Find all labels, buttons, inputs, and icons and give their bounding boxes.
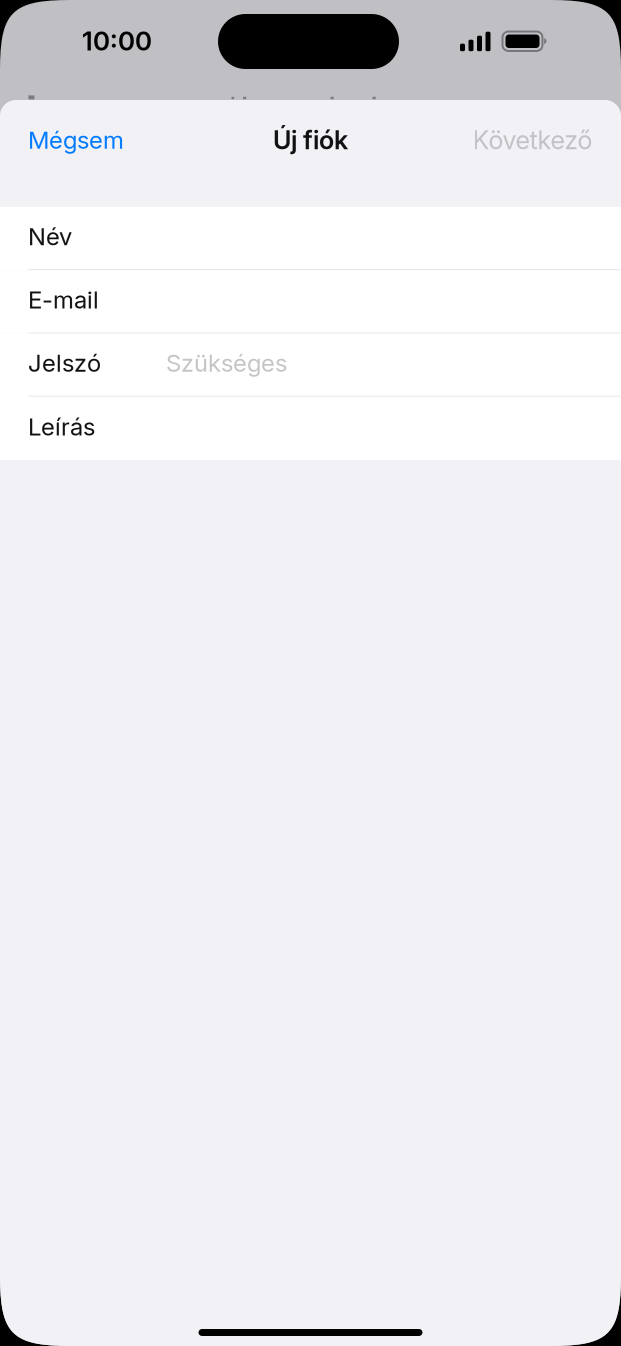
staticText: Új fiók	[273, 125, 348, 155]
staticText: Leírás	[28, 412, 95, 441]
staticText: E-mail	[28, 285, 99, 314]
staticText: 10:00	[82, 25, 152, 57]
staticText: Jelszó	[28, 349, 101, 378]
staticText: Következő	[472, 125, 592, 155]
staticText: Szükséges	[166, 349, 287, 378]
staticText: Mégsem	[28, 125, 124, 154]
button[interactable]: Név	[0, 207, 621, 270]
staticText: Név	[28, 222, 72, 251]
button[interactable]: Jelszó	[0, 333, 621, 397]
button[interactable]: Mégsem	[28, 106, 198, 174]
button[interactable]: E-mail	[0, 270, 621, 333]
button[interactable]: Következő	[392, 106, 592, 174]
button[interactable]: Leírás	[0, 397, 621, 460]
